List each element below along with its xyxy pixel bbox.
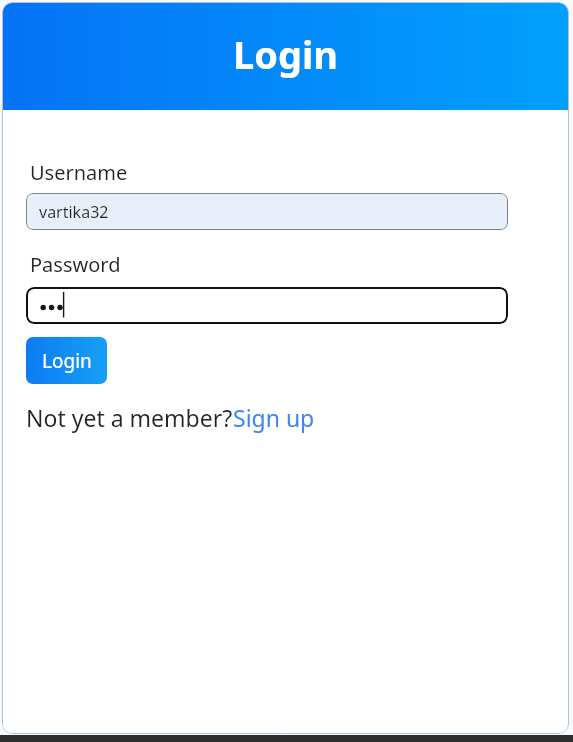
button[interactable]: [26, 287, 508, 324]
staticText: Login: [42, 348, 92, 374]
staticText: Login: [233, 28, 339, 80]
staticText: vartika32: [39, 201, 109, 223]
staticText: Not yet a member?: [26, 402, 233, 433]
staticText: Password: [30, 251, 121, 278]
button[interactable]: vartika32: [26, 193, 508, 230]
button[interactable]: Login: [26, 337, 107, 384]
staticText: Username: [30, 159, 128, 186]
button[interactable]: Sign up: [233, 402, 315, 433]
